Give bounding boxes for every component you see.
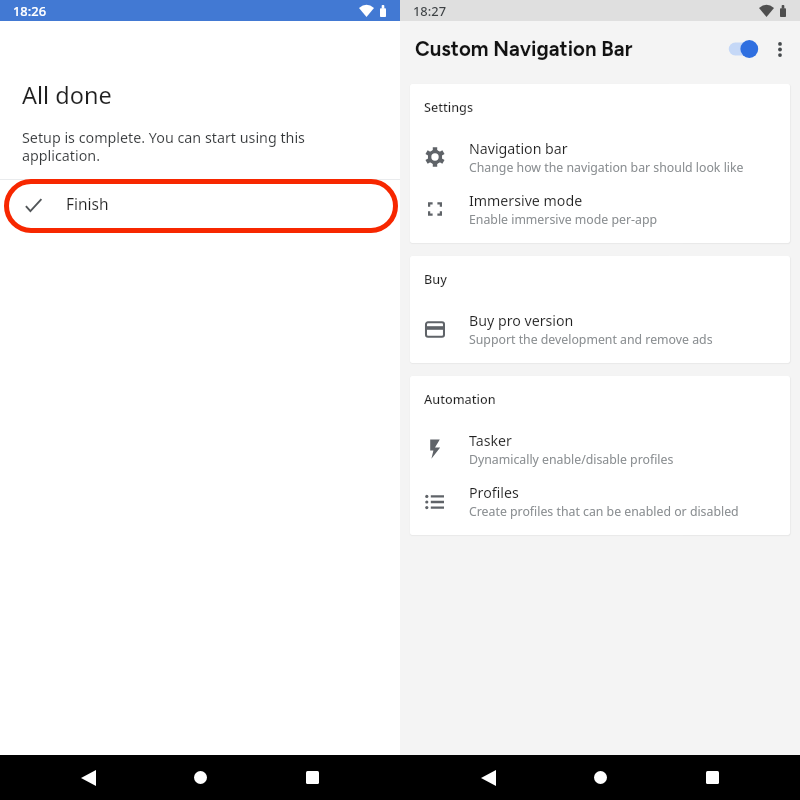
button[interactable]: Immersive mode [410, 183, 790, 235]
staticText: Settings [424, 99, 474, 116]
staticText: Profiles [469, 483, 519, 502]
button[interactable]: Home [144, 755, 256, 800]
staticText: Immersive mode [469, 191, 583, 210]
button[interactable]: Back [32, 755, 144, 800]
staticText: Navigation bar [469, 139, 568, 158]
staticText: 18:27 [413, 2, 446, 20]
staticText: Buy pro version [469, 311, 574, 330]
button[interactable]: Recent apps [256, 755, 368, 800]
staticText: Change how the navigation bar should loo… [469, 159, 744, 176]
button[interactable]: Home [544, 755, 656, 800]
button[interactable]: Profiles [410, 475, 790, 527]
staticText: All done [22, 79, 112, 111]
staticText: Setup is complete. You can start using t… [22, 128, 308, 165]
button[interactable]: Tasker [410, 423, 790, 475]
button[interactable]: More options [759, 25, 800, 73]
staticText: Buy [424, 271, 447, 288]
button[interactable]: Navigation bar [410, 131, 790, 183]
button[interactable]: Enable navigation bar [715, 25, 759, 73]
button[interactable]: Recent apps [656, 755, 768, 800]
staticText: Tasker [469, 431, 512, 450]
staticText: Create profiles that can be enabled or d… [469, 503, 739, 520]
staticText: Finish [66, 193, 109, 214]
staticText: Dynamically enable/disable profiles [469, 451, 674, 468]
staticText: Enable immersive mode per-app [469, 211, 658, 228]
staticText: Support the development and remove ads [469, 331, 713, 348]
button[interactable]: Back [432, 755, 544, 800]
button[interactable]: Buy pro version [410, 303, 790, 355]
button[interactable]: Finish [0, 180, 400, 226]
staticText: Custom Navigation Bar [415, 37, 633, 61]
staticText: Automation [424, 391, 496, 408]
staticText: 18:26 [13, 2, 46, 20]
